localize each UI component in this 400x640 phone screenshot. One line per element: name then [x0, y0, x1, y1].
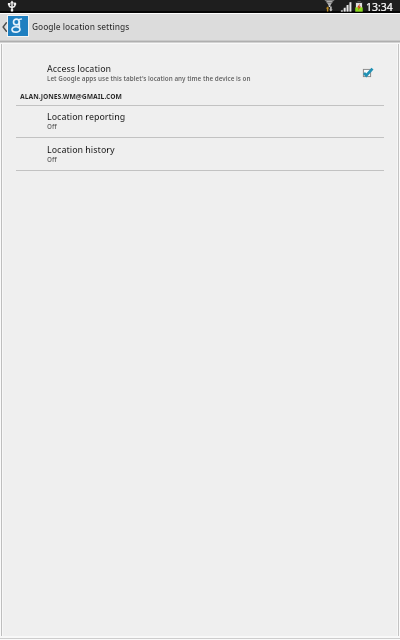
staticText: 13:34 [366, 0, 393, 14]
button[interactable]: Access location checkbox [357, 63, 377, 83]
staticText: Google location settings [32, 21, 130, 32]
staticText: ALAN.JONES.WM@GMAIL.COM [20, 92, 122, 101]
other: USB connected [8, 0, 16, 12]
button[interactable] [0, 44, 400, 90]
staticText: Off [47, 155, 57, 164]
button[interactable] [0, 138, 400, 170]
button[interactable] [0, 106, 400, 138]
staticText: Access location [47, 63, 112, 75]
staticText: Let Google apps use this tablet's locati… [47, 74, 251, 83]
staticText: Off [47, 122, 57, 131]
other: Navigate up [2, 22, 7, 32]
button[interactable]: Navigate up [0, 14, 400, 40]
staticText: Location reporting [47, 111, 126, 123]
staticText: Location history [47, 144, 115, 156]
